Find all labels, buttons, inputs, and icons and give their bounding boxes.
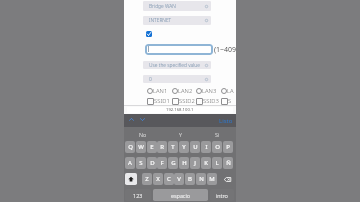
staticText: S [139,159,143,167]
button[interactable]: SSID2 [172,97,195,105]
staticText: L [215,159,219,167]
staticText: S [228,97,232,105]
staticText: LA [227,87,234,95]
staticText: J [194,159,196,167]
button[interactable]: Shift [125,173,137,185]
button[interactable]: LAN3 [196,87,217,95]
button[interactable]: Previous field [126,114,137,125]
button[interactable]: intro [210,189,234,201]
button[interactable]: F [157,157,167,169]
staticText: W [138,143,144,151]
button[interactable]: Use the specified value [143,61,211,69]
staticText: R [160,143,164,151]
staticText: 0 [149,76,152,83]
button[interactable]: V [174,173,184,185]
staticText: Y [182,143,186,151]
button[interactable]: LAN1 [147,87,168,95]
button[interactable]: X [153,173,163,185]
button[interactable]: 0 [143,75,211,83]
button[interactable]: G [168,157,178,169]
button[interactable]: 192.168.100.1 [127,107,233,113]
staticText: Si [215,131,220,138]
button[interactable]: I [201,141,211,153]
button[interactable]: T [168,141,178,153]
staticText: Listo [219,117,233,125]
button[interactable]: Next field [137,114,148,125]
button[interactable]: K [201,157,211,169]
staticText: P [226,143,230,151]
staticText: LAN1 [153,87,168,95]
button[interactable]: Y [170,128,190,140]
button[interactable]: M [207,173,217,185]
button[interactable]: C [164,173,174,185]
button[interactable]: B [185,173,195,185]
staticText: V [177,175,181,183]
button[interactable]: SSID1 [147,97,170,105]
staticText: Use the specified value [149,62,200,69]
staticText: D [150,159,155,167]
staticText: K [204,159,208,167]
staticText: Y [179,131,182,138]
button[interactable]: O [212,141,222,153]
staticText: E [150,143,154,151]
staticText: intro [216,192,228,199]
staticText: espacio [171,192,190,199]
button[interactable]: SSID3 [196,97,219,105]
button[interactable]: J [190,157,200,169]
staticText: H [182,159,187,167]
button[interactable]: No [133,128,153,140]
button[interactable]: U [190,141,200,153]
button[interactable]: S [136,157,146,169]
button[interactable]: 123 [125,189,151,201]
staticText: Bridge WAN [149,3,176,10]
staticText: I [205,143,208,151]
button[interactable]: Q [125,141,135,153]
staticText: C [167,175,171,183]
button[interactable]: Y [179,141,189,153]
staticText: No [139,131,147,138]
staticText: G [171,159,176,167]
button[interactable]: Z [142,173,152,185]
button[interactable]: INTERNET [143,16,211,25]
button[interactable]: Ñ [223,157,233,169]
button[interactable]: LAN2 [172,87,193,95]
button[interactable]: A [125,157,135,169]
staticText: F [160,159,164,167]
button[interactable] [145,44,213,55]
button[interactable]: Enabled [146,31,152,37]
staticText: U [193,143,198,151]
staticText: O [215,143,220,151]
button[interactable]: Listo [219,114,233,127]
button[interactable]: H [179,157,189,169]
staticText: LAN3 [202,87,217,95]
staticText: LAN2 [178,87,193,95]
staticText: Z [145,175,149,183]
button[interactable]: R [157,141,167,153]
button[interactable]: Backspace [221,173,233,185]
staticText: (1~4093) [214,45,236,55]
button[interactable]: Si [207,128,227,140]
button[interactable]: W [136,141,146,153]
staticText: M [209,175,215,183]
staticText: 192.168.100.1 [166,107,194,113]
button[interactable]: P [223,141,233,153]
button[interactable]: E [147,141,157,153]
button[interactable]: espacio [153,189,208,201]
button[interactable]: Bridge WAN [143,1,211,11]
button[interactable]: S [221,97,232,105]
staticText: B [188,175,192,183]
staticText: SSID1 [154,97,170,105]
staticText: SSID3 [203,97,219,105]
staticText: N [199,175,204,183]
button[interactable]: N [196,173,206,185]
button[interactable]: LA [221,87,234,95]
staticText: A [128,159,132,167]
staticText: T [171,143,175,151]
staticText: 123 [133,192,143,199]
button[interactable]: D [147,157,157,169]
staticText: Q [128,143,133,151]
staticText: X [156,175,160,183]
staticText: Ñ [226,159,231,167]
button[interactable]: L [212,157,222,169]
staticText: INTERNET [149,17,172,24]
